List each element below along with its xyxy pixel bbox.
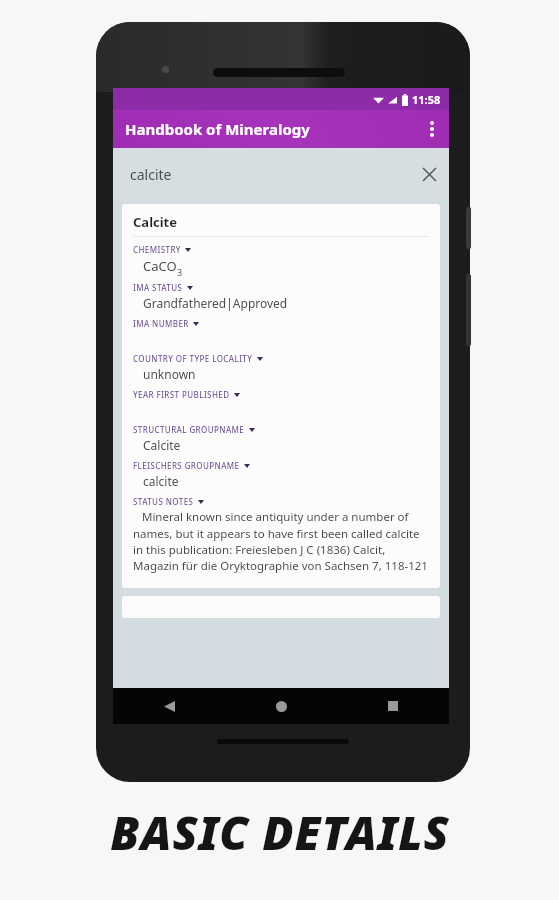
staticText: CaCO bbox=[143, 257, 177, 275]
staticText: FLEISCHERS GROUPNAME bbox=[133, 460, 240, 471]
staticText: Mineral known since antiquity under a nu… bbox=[133, 509, 429, 573]
button[interactable]: Recent apps bbox=[337, 688, 449, 724]
staticText: Calcite bbox=[143, 437, 181, 453]
button[interactable]: Home bbox=[225, 688, 337, 724]
staticText: STATUS NOTES bbox=[133, 496, 194, 507]
staticText: 11:58 bbox=[412, 92, 441, 107]
staticText: calcite bbox=[130, 165, 172, 184]
button[interactable]: calcite bbox=[113, 148, 449, 200]
staticText: IMA NUMBER bbox=[133, 318, 189, 329]
staticText: IMA STATUS bbox=[133, 282, 183, 293]
staticText: 3 bbox=[177, 266, 183, 278]
button[interactable]: Calcite bbox=[122, 204, 440, 588]
staticText: unknown bbox=[143, 366, 196, 382]
button[interactable]: Back bbox=[113, 688, 225, 724]
staticText: STRUCTURAL GROUPNAME bbox=[133, 424, 245, 435]
staticText: CHEMISTRY bbox=[133, 244, 181, 255]
staticText: calcite bbox=[143, 473, 179, 489]
staticText: Handbook of Mineralogy bbox=[125, 119, 310, 139]
staticText: BASIC DETAILS bbox=[110, 801, 450, 864]
staticText: Grandfathered|Approved bbox=[143, 295, 288, 311]
staticText: Calcite bbox=[133, 213, 178, 231]
staticText: COUNTRY OF TYPE LOCALITY bbox=[133, 353, 253, 364]
button[interactable]: Clear search bbox=[409, 154, 449, 194]
button[interactable]: More options bbox=[415, 110, 449, 148]
staticText: YEAR FIRST PUBLISHED bbox=[133, 389, 230, 400]
